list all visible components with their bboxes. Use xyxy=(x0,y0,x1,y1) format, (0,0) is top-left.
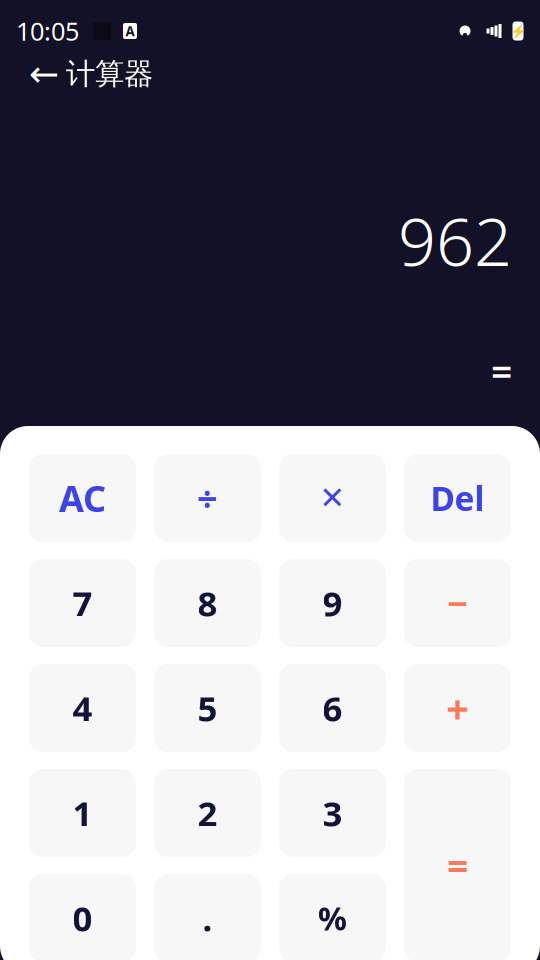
staticText: = xyxy=(491,346,512,396)
button[interactable]: AC xyxy=(29,454,136,542)
staticText: . xyxy=(202,895,212,941)
button[interactable]: 2 xyxy=(154,769,261,857)
staticText: ← xyxy=(29,54,59,94)
staticText: 4 xyxy=(72,685,92,731)
button[interactable]: 4 xyxy=(29,664,136,752)
staticText: 2 xyxy=(197,790,217,836)
staticText: 3 xyxy=(322,790,342,836)
button[interactable]: 8 xyxy=(154,559,261,647)
staticText: 9 xyxy=(322,580,342,626)
staticText: ✕ xyxy=(319,481,345,515)
staticText: = xyxy=(447,841,468,890)
staticText: 计算器 xyxy=(66,56,153,92)
staticText: Del xyxy=(430,476,484,520)
button[interactable]: 5 xyxy=(154,664,261,752)
staticText: 1 xyxy=(72,790,92,836)
staticText: 8 xyxy=(197,580,217,626)
button[interactable]: − xyxy=(404,559,511,647)
staticText: A xyxy=(125,22,134,40)
button[interactable]: 0 xyxy=(29,874,136,960)
staticText: 7 xyxy=(72,580,92,626)
button[interactable]: 1 xyxy=(29,769,136,857)
staticText: ⚡ xyxy=(509,23,526,39)
staticText: 6 xyxy=(322,685,342,731)
staticText: − xyxy=(447,579,468,627)
staticText: % xyxy=(318,897,347,939)
staticText: 10:05 xyxy=(16,14,79,48)
button[interactable]: 9 xyxy=(279,559,386,647)
button[interactable]: % xyxy=(279,874,386,960)
button[interactable]: = xyxy=(404,769,511,960)
button[interactable]: Del xyxy=(404,454,511,542)
staticText: 0 xyxy=(72,895,92,941)
button[interactable]: ✕ xyxy=(279,454,386,542)
button[interactable]: Back xyxy=(22,52,66,96)
button[interactable]: . xyxy=(154,874,261,960)
staticText: 5 xyxy=(197,685,217,731)
button[interactable]: + xyxy=(404,664,511,752)
button[interactable]: 6 xyxy=(279,664,386,752)
staticText: + xyxy=(446,681,469,734)
button[interactable]: 7 xyxy=(29,559,136,647)
button[interactable]: 3 xyxy=(279,769,386,857)
staticText: ÷ xyxy=(197,474,218,522)
staticText: AC xyxy=(59,474,106,522)
button[interactable]: ÷ xyxy=(154,454,261,542)
staticText: 962 xyxy=(398,196,512,284)
